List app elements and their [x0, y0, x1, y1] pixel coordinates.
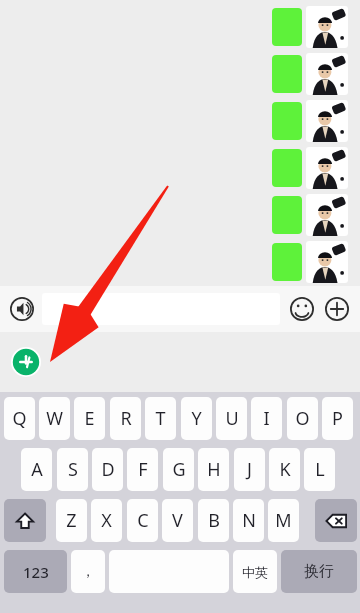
staticText: 换行 — [304, 562, 334, 581]
staticText: V — [172, 508, 183, 533]
other: Avatar — [306, 147, 348, 189]
button[interactable]: S — [57, 448, 88, 491]
staticText: M — [275, 508, 292, 533]
button[interactable]: U — [216, 397, 247, 440]
button[interactable]: Shift — [4, 499, 46, 542]
button[interactable]: ， — [71, 550, 105, 593]
staticText: 中英 — [242, 564, 268, 580]
button[interactable]: V — [162, 499, 193, 542]
button[interactable]: E — [74, 397, 105, 440]
staticText: I — [263, 406, 270, 431]
staticText: E — [84, 406, 95, 431]
button[interactable]: J — [234, 448, 265, 491]
button[interactable]: X — [91, 499, 122, 542]
button[interactable]: Voice input — [7, 294, 37, 324]
staticText: L — [315, 457, 325, 482]
button[interactable]: Avatar — [272, 100, 348, 143]
button[interactable]: Backspace — [315, 499, 357, 542]
button[interactable]: L — [304, 448, 335, 491]
button[interactable]: O — [287, 397, 318, 440]
staticText: F — [138, 457, 148, 482]
staticText: S — [68, 457, 78, 482]
staticText: J — [247, 457, 252, 482]
button[interactable]: Avatar — [272, 6, 348, 49]
other: Avatar — [306, 194, 348, 236]
staticText: N — [242, 508, 256, 533]
button[interactable]: Q — [4, 397, 35, 440]
button[interactable]: Y — [181, 397, 212, 440]
button[interactable]: H — [198, 448, 229, 491]
button[interactable]: 中英 — [233, 550, 277, 593]
staticText: B — [208, 508, 220, 533]
other: Avatar — [306, 100, 348, 142]
button[interactable]: D — [92, 448, 123, 491]
button[interactable]: W — [39, 397, 70, 440]
button[interactable]: P — [322, 397, 353, 440]
staticText: Z — [66, 508, 77, 533]
staticText: A — [31, 457, 43, 482]
button[interactable]: Avatar — [272, 241, 348, 284]
staticText: Q — [12, 406, 27, 431]
button[interactable]: R — [110, 397, 141, 440]
button[interactable]: B — [198, 499, 229, 542]
button[interactable]: C — [127, 499, 158, 542]
staticText: H — [207, 457, 221, 482]
button[interactable]: G — [163, 448, 194, 491]
button[interactable]: I — [251, 397, 282, 440]
button[interactable]: Z — [56, 499, 87, 542]
staticText: Y — [191, 406, 202, 431]
button[interactable]: Avatar — [272, 147, 348, 190]
button[interactable]: N — [233, 499, 264, 542]
button[interactable]: Avatar — [272, 53, 348, 96]
staticText: D — [101, 457, 115, 482]
button[interactable]: T — [145, 397, 176, 440]
staticText: P — [332, 406, 343, 431]
staticText: U — [225, 406, 239, 431]
staticText: ， — [81, 563, 95, 581]
staticText: R — [120, 406, 132, 431]
button[interactable]: F — [127, 448, 158, 491]
staticText: W — [46, 406, 63, 431]
button[interactable]: M — [268, 499, 299, 542]
staticText: X — [101, 508, 112, 533]
other: Avatar — [306, 241, 348, 283]
button[interactable]: Quick action — [10, 346, 42, 378]
button[interactable]: More — [322, 294, 352, 324]
button[interactable]: Avatar — [272, 194, 348, 237]
other: Avatar — [306, 53, 348, 95]
button[interactable]: A — [21, 448, 52, 491]
staticText: T — [155, 406, 166, 431]
staticText: O — [295, 406, 310, 431]
button[interactable]: K — [269, 448, 300, 491]
staticText: G — [172, 457, 186, 482]
button[interactable]: Emoji — [287, 294, 317, 324]
other: Avatar — [306, 6, 348, 48]
button[interactable]: 123 — [4, 550, 67, 593]
button[interactable]: 换行 — [281, 550, 357, 593]
staticText: C — [137, 508, 149, 533]
staticText: 123 — [23, 562, 49, 582]
button[interactable] — [42, 293, 280, 325]
staticText: K — [279, 457, 291, 482]
